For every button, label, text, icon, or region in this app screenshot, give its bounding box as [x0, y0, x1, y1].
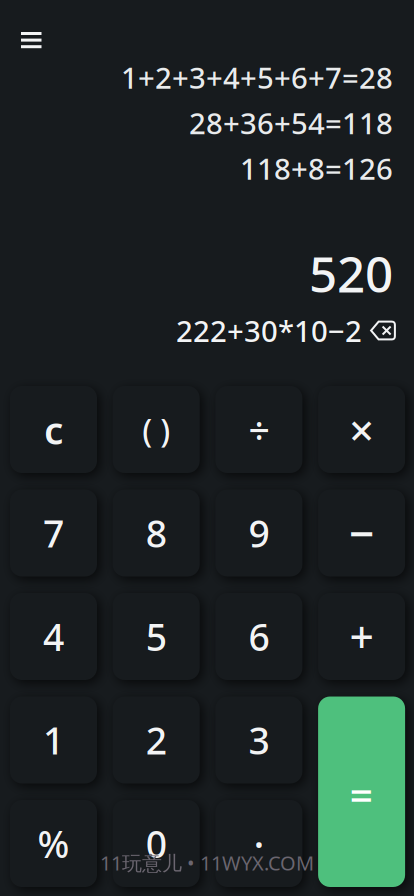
staticText: 6 [248, 612, 269, 661]
staticText: c [44, 404, 63, 455]
button[interactable]: 7 [10, 489, 97, 576]
button[interactable]: 2 [113, 696, 200, 783]
button[interactable]: 9 [215, 489, 302, 576]
button[interactable]: Backspace [370, 320, 396, 340]
staticText: 1+2+3+4+5+6+7=28 [121, 58, 393, 97]
staticText: · [253, 817, 264, 870]
button[interactable]: + [318, 593, 405, 680]
staticText: − [349, 504, 374, 562]
staticText: 1 [43, 715, 64, 765]
staticText: 2 [146, 715, 167, 765]
staticText: 3 [248, 715, 269, 765]
staticText: 4 [43, 612, 64, 661]
button[interactable]: 4 [10, 593, 97, 680]
button[interactable]: c [10, 386, 97, 473]
staticText: 9 [248, 508, 269, 558]
staticText: 7 [43, 508, 64, 558]
staticText: × [349, 400, 374, 459]
staticText: 5 [146, 612, 167, 661]
button[interactable]: 0 [113, 800, 200, 887]
button[interactable]: Menu [0, 0, 59, 57]
staticText: 222+30*10−2 [176, 311, 362, 350]
staticText: 0 [146, 819, 167, 868]
button[interactable]: 5 [113, 593, 200, 680]
button[interactable]: 8 [113, 489, 200, 576]
staticText: 118+8=126 [240, 149, 393, 188]
staticText: 520 [309, 240, 393, 306]
button[interactable]: 1 [10, 696, 97, 783]
button[interactable]: = [318, 696, 405, 887]
button[interactable]: ÷ [215, 386, 302, 473]
staticText: ÷ [248, 405, 269, 454]
staticText: = [350, 767, 374, 822]
staticText: + [350, 608, 374, 665]
button[interactable]: × [318, 386, 405, 473]
button[interactable]: · [215, 800, 302, 887]
staticText: 28+36+54=118 [189, 103, 393, 142]
staticText: 11玩意儿 • 11WYX.COM [100, 849, 314, 876]
button[interactable]: 6 [215, 593, 302, 680]
staticText: 8 [146, 508, 167, 558]
staticText: ( ) [142, 408, 170, 451]
button[interactable]: ( ) [113, 386, 200, 473]
staticText: % [37, 819, 69, 868]
button[interactable]: − [318, 489, 405, 576]
button[interactable]: % [10, 800, 97, 887]
button[interactable]: 3 [215, 696, 302, 783]
